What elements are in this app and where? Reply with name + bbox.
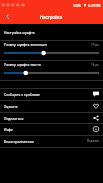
other: Share — [93, 115, 99, 121]
button[interactable]: Размер шрифта текста — [0, 60, 103, 79]
staticText: Сообщить о проблеме — [4, 92, 40, 97]
button[interactable]: Оценить — [0, 100, 103, 112]
staticText: 100% — [73, 3, 82, 7]
staticText: 19 px — [91, 43, 99, 47]
staticText: Оценить — [4, 104, 18, 109]
staticText: Размер шрифта заголовка — [4, 42, 47, 47]
staticText: Инфо — [4, 127, 13, 132]
staticText: Поделиться — [4, 116, 24, 121]
button[interactable]: Сообщить о проблеме — [0, 88, 103, 100]
staticText: Настройка — [40, 14, 63, 20]
other: Rate — [93, 103, 99, 109]
other: Info — [93, 126, 99, 132]
staticText: Ваши приложения — [4, 139, 34, 144]
button[interactable]: Размер шрифта заголовка — [0, 40, 103, 59]
staticText: Настройка шрифта — [4, 30, 35, 35]
button[interactable]: Ваши приложения — [0, 135, 103, 147]
other: Report a problem — [93, 91, 99, 97]
staticText: 16 px — [91, 63, 99, 67]
button[interactable]: Инфо — [0, 123, 103, 135]
staticText: Размер шрифта текста — [4, 62, 41, 67]
button[interactable]: Поделиться — [0, 112, 103, 124]
staticText: 6:39 PM — [88, 3, 101, 7]
staticText: Russian — [87, 139, 99, 143]
button[interactable]: Back — [0, 9, 15, 24]
